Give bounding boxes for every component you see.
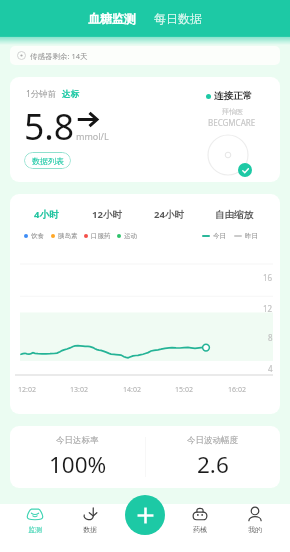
button[interactable]: Add record	[125, 495, 165, 535]
staticText: 药械	[193, 525, 207, 534]
staticText: 自由缩放	[215, 209, 253, 221]
staticText: 今日波动幅度	[187, 435, 238, 446]
button[interactable]: 今日波动幅度	[145, 426, 280, 488]
staticText: 传感器剩余: 14天	[30, 51, 88, 61]
button[interactable]: 今日达标率	[10, 426, 145, 488]
staticText: 连接正常	[214, 90, 252, 102]
staticText: 100%	[49, 449, 107, 480]
staticText: 监测	[28, 525, 42, 534]
staticText: 8	[268, 332, 273, 343]
staticText: 每日数据	[154, 11, 202, 26]
staticText: 16:02	[228, 385, 246, 395]
staticText: 14:02	[123, 385, 141, 395]
staticText: 饮食	[31, 232, 44, 240]
staticText: 5.8	[24, 102, 75, 150]
staticText: 拜怡医	[222, 107, 243, 116]
button[interactable]: 监测	[14, 506, 56, 546]
button[interactable]: 药械	[179, 506, 221, 546]
staticText: 昨日	[245, 232, 258, 240]
staticText: 15:02	[175, 385, 193, 395]
button[interactable]: 数据	[69, 506, 111, 546]
staticText: 达标	[62, 89, 79, 100]
staticText: 数据	[83, 525, 97, 534]
staticText: 胰岛素	[58, 232, 78, 240]
staticText: 13:02	[70, 385, 88, 395]
button[interactable]: 24小时	[154, 205, 184, 224]
button[interactable]: 12小时	[92, 205, 122, 224]
button[interactable]: 自由缩放	[215, 206, 253, 224]
staticText: 4	[268, 363, 273, 374]
button[interactable]: 传感器剩余: 14天	[10, 46, 280, 65]
staticText: 12	[263, 303, 273, 314]
staticText: 血糖监测	[88, 11, 136, 26]
staticText: 今日	[213, 232, 226, 240]
staticText: 数据列表	[32, 156, 64, 166]
staticText: 1分钟前	[26, 88, 57, 100]
staticText: 16	[263, 272, 273, 283]
staticText: mmol/L	[76, 130, 109, 142]
button[interactable]: 数据列表	[24, 152, 71, 169]
button[interactable]: 4小时	[34, 205, 59, 224]
staticText: 口服药	[91, 232, 111, 240]
button[interactable]: 每日数据	[151, 7, 205, 30]
staticText: 2.6	[197, 449, 229, 480]
staticText: 12小时	[92, 208, 122, 221]
staticText: 我的	[248, 525, 262, 534]
staticText: 今日达标率	[56, 435, 99, 446]
staticText: BECGMCARE	[208, 117, 256, 128]
button[interactable]: 血糖监测	[85, 7, 139, 30]
staticText: 24小时	[154, 208, 184, 221]
staticText: 4小时	[34, 208, 59, 221]
staticText: 运动	[124, 232, 137, 240]
button[interactable]: 我的	[234, 506, 276, 546]
staticText: 12:02	[18, 385, 36, 395]
